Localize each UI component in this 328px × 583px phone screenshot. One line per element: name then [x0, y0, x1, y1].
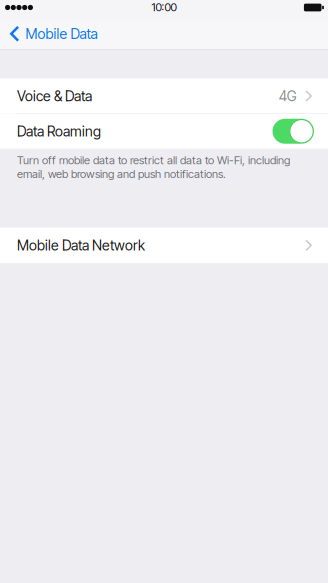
button[interactable]: Mobile Data Network — [0, 228, 328, 263]
staticText: Turn off mobile data to restrict all dat… — [17, 153, 290, 181]
staticText: 10:00 — [151, 0, 176, 14]
staticText: Mobile Data — [26, 25, 98, 42]
staticText: Data Roaming — [17, 123, 101, 140]
staticText: Voice & Data — [17, 87, 92, 104]
button[interactable]: Voice & Data — [0, 78, 328, 113]
staticText: Mobile Data Network — [17, 237, 145, 254]
button[interactable]: Data Roaming, on — [272, 119, 314, 144]
staticText: 4G — [279, 87, 297, 104]
button[interactable]: Mobile Data — [0, 20, 108, 49]
